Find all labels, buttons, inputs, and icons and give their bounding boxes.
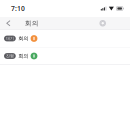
- button[interactable]: Settings: [94, 17, 111, 29]
- staticText: 회의: [18, 35, 28, 42]
- staticText: 대기: [6, 36, 14, 41]
- staticText: 회의: [18, 53, 28, 59]
- button[interactable]: 대기: [0, 30, 130, 47]
- staticText: 진행: [6, 53, 14, 58]
- button[interactable]: 진행: [0, 47, 130, 64]
- button[interactable]: 회의: [17, 17, 43, 29]
- staticText: 회의: [25, 19, 39, 27]
- button[interactable]: Back: [0, 17, 17, 29]
- staticText: 7:10: [11, 4, 25, 13]
